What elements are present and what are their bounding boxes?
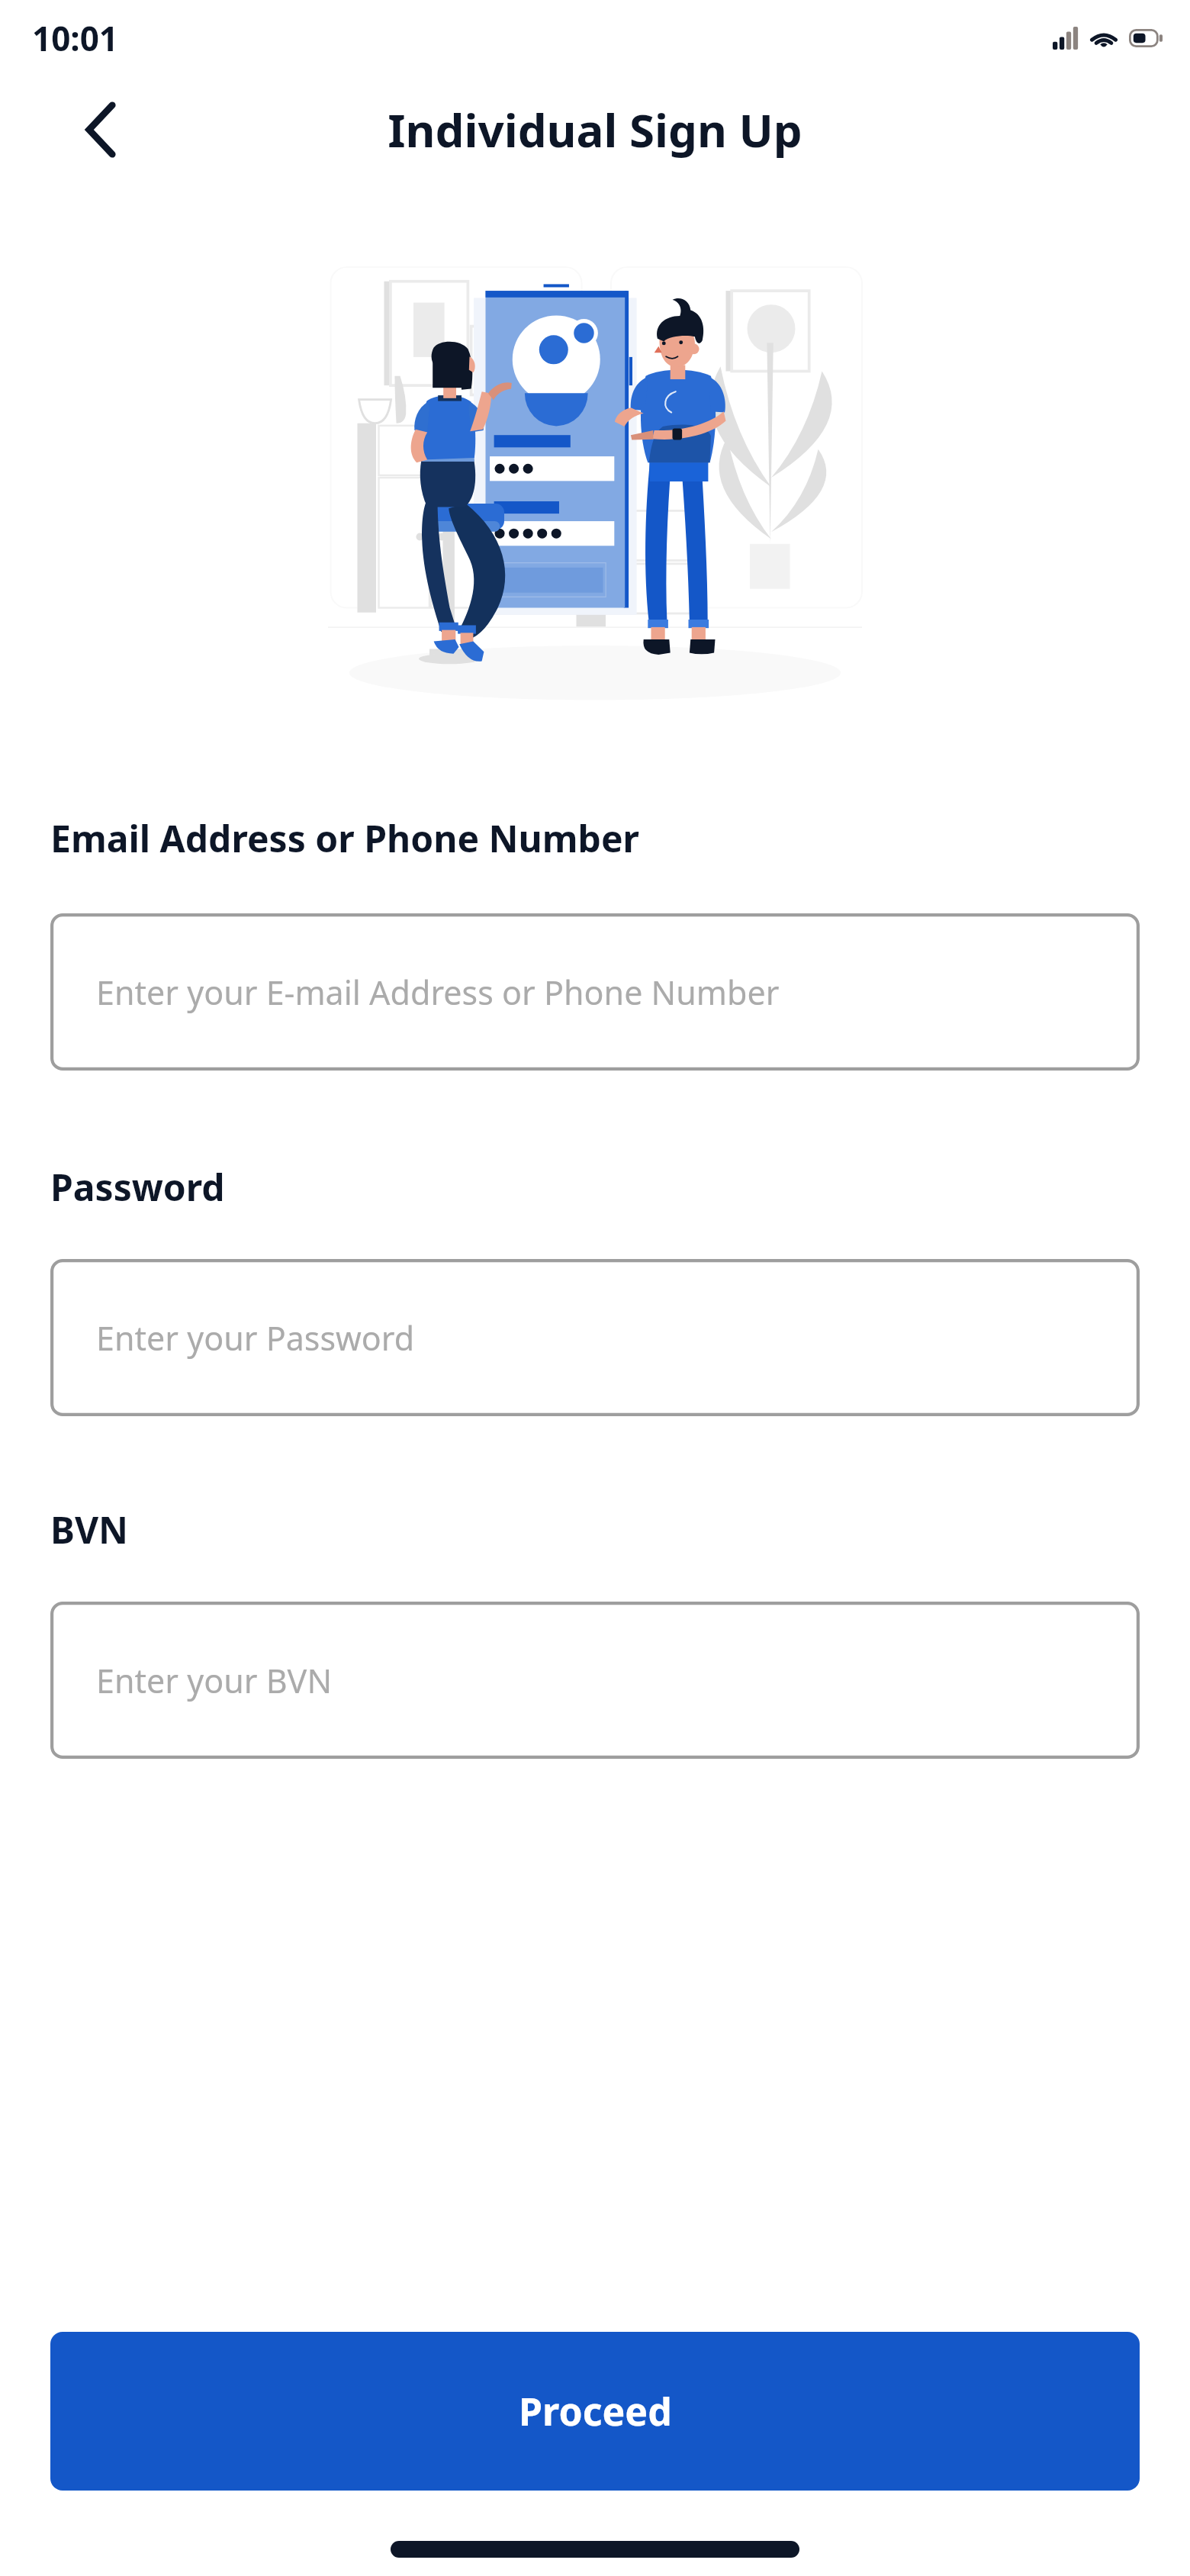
staticText: BVN: [50, 1505, 129, 1554]
button[interactable]: Enter your E-mail Address or Phone Numbe…: [50, 913, 1140, 1071]
button[interactable]: Proceed: [50, 2332, 1140, 2491]
staticText: 10:01: [32, 15, 119, 61]
staticText: Email Address or Phone Number: [50, 813, 640, 863]
button[interactable]: Back: [66, 95, 136, 165]
staticText: Password: [50, 1162, 225, 1212]
button[interactable]: Enter your Password: [50, 1259, 1140, 1416]
staticText: Enter your BVN: [96, 1658, 333, 1703]
staticText: Proceed: [519, 2385, 672, 2437]
staticText: Enter your E-mail Address or Phone Numbe…: [96, 970, 780, 1015]
staticText: Enter your Password: [96, 1315, 415, 1360]
staticText: Individual Sign Up: [388, 98, 802, 161]
button[interactable]: Enter your BVN: [50, 1602, 1140, 1759]
